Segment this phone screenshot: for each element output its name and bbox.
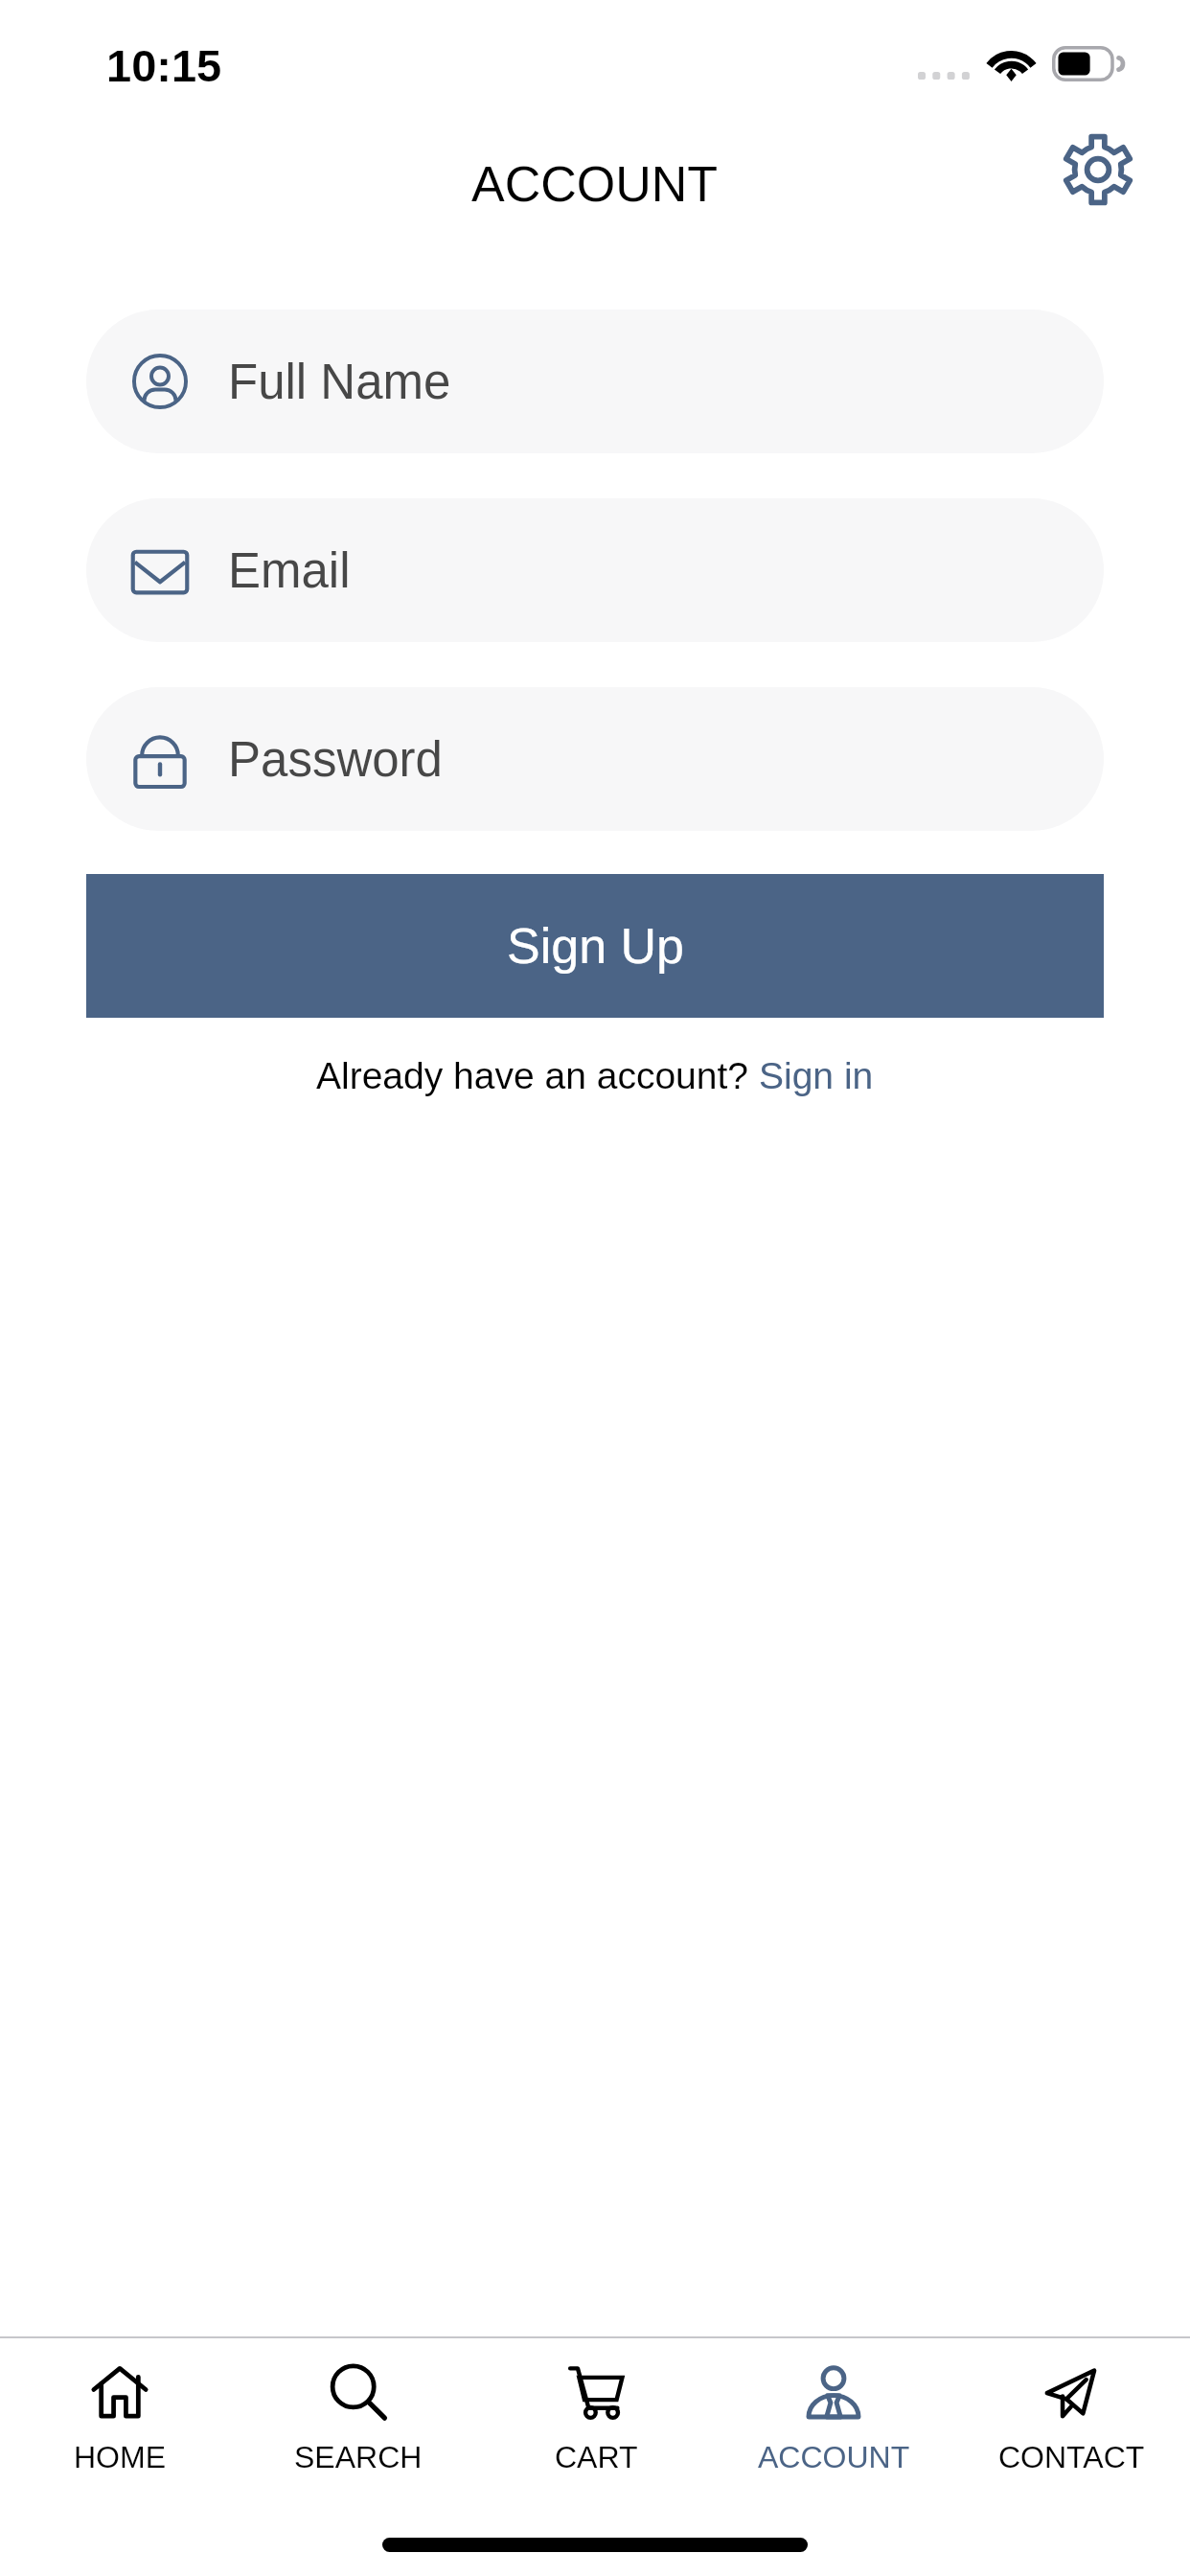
staticText: Already have an account? <box>316 1055 759 1097</box>
button[interactable]: Full Name <box>86 310 1104 453</box>
staticText: SEARCH <box>294 2440 423 2474</box>
staticText: Sign Up <box>507 918 684 974</box>
staticText: Email <box>228 543 351 598</box>
button[interactable]: Email <box>86 498 1104 642</box>
button[interactable]: ACCOUNT <box>715 2338 952 2480</box>
button[interactable]: HOME <box>0 2338 239 2480</box>
staticText: HOME <box>74 2440 166 2474</box>
button[interactable]: SEARCH <box>239 2338 477 2480</box>
button[interactable]: Sign Up <box>86 874 1104 1018</box>
staticText: Sign in <box>759 1055 874 1097</box>
button[interactable]: CART <box>477 2338 715 2480</box>
button[interactable]: Settings <box>1062 133 1134 206</box>
staticText: ACCOUNT <box>758 2440 910 2474</box>
staticText: ACCOUNT <box>471 156 719 212</box>
button[interactable]: Password <box>86 687 1104 831</box>
staticText: Password <box>228 732 443 787</box>
button[interactable]: Sign in <box>759 1055 874 1097</box>
staticText: CONTACT <box>998 2440 1145 2474</box>
staticText: 10:15 <box>106 40 222 91</box>
staticText: CART <box>555 2440 638 2474</box>
button[interactable]: CONTACT <box>952 2338 1190 2480</box>
staticText: Full Name <box>228 355 451 409</box>
